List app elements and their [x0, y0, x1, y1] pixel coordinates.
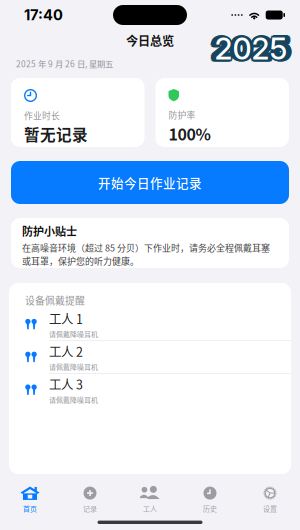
staticText: 设置 — [263, 504, 277, 514]
button[interactable]: 工人 1 — [9, 308, 291, 340]
button[interactable]: 历史 — [180, 487, 240, 514]
staticText: 开始今日作业记录 — [98, 173, 202, 191]
button[interactable]: 工人 — [120, 487, 180, 514]
button[interactable]: 工人 3 — [9, 374, 291, 406]
staticText: 2025 — [214, 30, 287, 67]
staticText: 暂无记录 — [24, 123, 88, 145]
staticText: 2025 — [210, 29, 288, 65]
button[interactable]: 工人 2 — [9, 341, 291, 373]
staticText: 2025 — [212, 33, 290, 69]
staticText: 2025 — [212, 30, 290, 67]
staticText: 历史 — [203, 504, 217, 514]
staticText: 100% — [168, 122, 210, 145]
staticText: 首页 — [23, 504, 37, 514]
staticText: 2025 — [210, 32, 288, 68]
staticText: 2025 年 9 月 26 日, 星期五 — [16, 57, 113, 70]
staticText: 今日总览 — [126, 32, 174, 49]
staticText: 作业时长 — [24, 109, 60, 122]
button[interactable]: 首页 — [0, 487, 60, 514]
staticText: 防护率 — [168, 108, 195, 121]
staticText: 请佩戴降噪耳机 — [49, 329, 98, 339]
staticText: 2025 — [212, 28, 290, 64]
staticText: 工人 2 — [49, 342, 83, 360]
staticText: 请佩戴降噪耳机 — [49, 362, 98, 372]
staticText: 在高噪音环境（超过 85 分贝）下作业时，请务必全程佩戴耳塞或耳罩，保护您的听力… — [22, 241, 270, 267]
staticText: 17:40 — [24, 6, 63, 24]
staticText: 请佩戴降噪耳机 — [49, 395, 98, 405]
staticText: 防护小贴士 — [22, 223, 77, 239]
staticText: 工人 1 — [49, 309, 83, 327]
button[interactable]: 设置 — [240, 487, 300, 514]
staticText: 2025 — [214, 32, 292, 68]
staticText: 设备佩戴提醒 — [25, 293, 85, 307]
staticText: 记录 — [83, 504, 97, 514]
staticText: 工人 — [143, 504, 157, 514]
staticText: 2025 — [210, 30, 288, 67]
button[interactable]: 开始今日作业记录 — [11, 161, 289, 204]
staticText: 2025 — [214, 30, 292, 67]
staticText: 工人 3 — [49, 375, 83, 393]
staticText: 2025 — [214, 29, 292, 65]
button[interactable]: 记录 — [60, 487, 120, 514]
